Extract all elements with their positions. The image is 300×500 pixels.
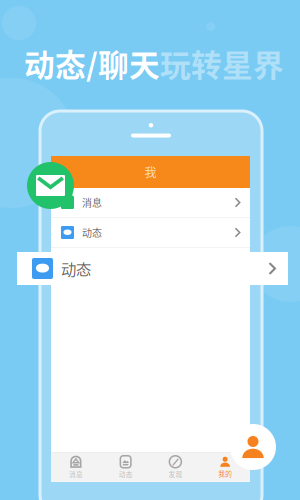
staticText: 动态 — [61, 257, 91, 280]
button[interactable]: 我的 — [230, 424, 276, 470]
staticText: 消息 — [82, 195, 102, 210]
button[interactable]: 动态 — [51, 218, 250, 248]
button[interactable]: 动态 — [17, 252, 288, 285]
staticText: 我 — [144, 163, 156, 181]
staticText: 我的 — [218, 469, 232, 478]
staticText: 动态 — [119, 469, 133, 479]
button[interactable]: 发现 — [150, 453, 200, 482]
staticText: 玩转星界 — [160, 41, 284, 85]
button[interactable]: 动态 — [101, 453, 151, 482]
staticText: 消息 — [69, 469, 83, 479]
staticText: 动态/聊天 — [24, 41, 160, 85]
button[interactable]: 消息 — [51, 188, 250, 218]
button[interactable]: 消息 — [51, 453, 101, 482]
button[interactable]: 我的 — [200, 453, 250, 482]
staticText: 发现 — [168, 469, 182, 479]
staticText: 动态 — [82, 225, 102, 240]
